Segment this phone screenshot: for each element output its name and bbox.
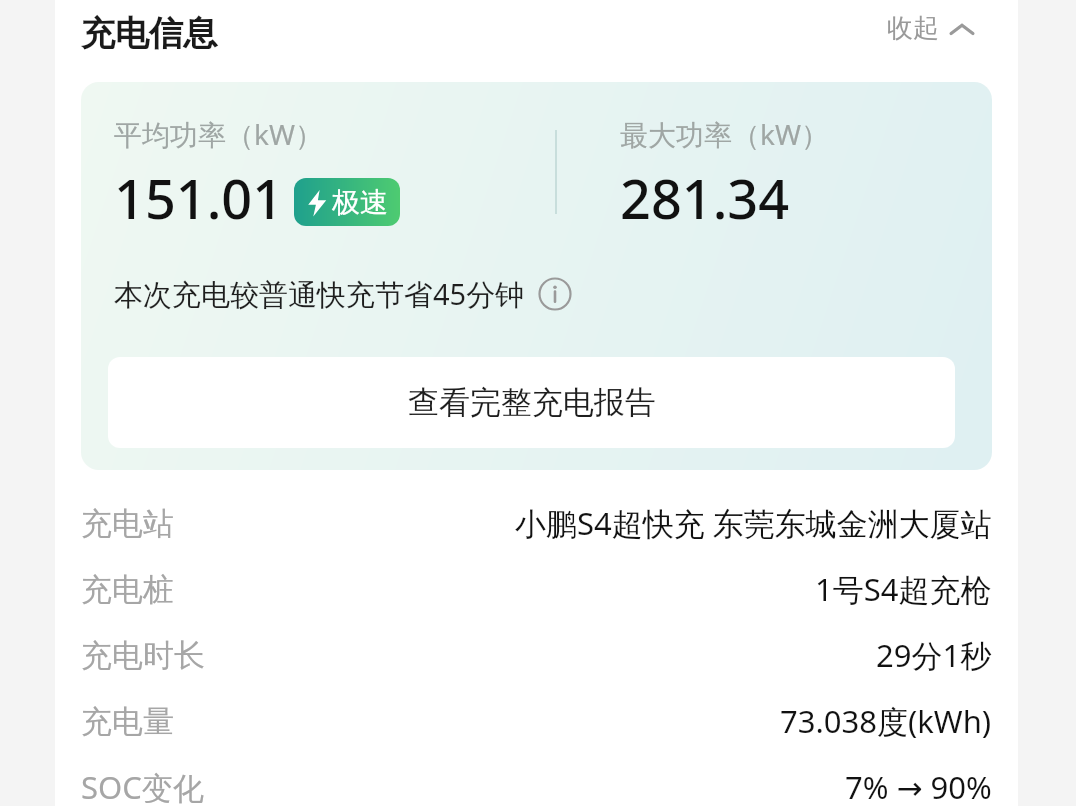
staticText: 充电量 bbox=[81, 702, 174, 741]
staticText: 1号S4超充枪 bbox=[815, 568, 992, 610]
button[interactable]: 充电桩 bbox=[81, 558, 992, 620]
button[interactable]: 收起 bbox=[883, 8, 979, 49]
button[interactable]: 充电时长 bbox=[81, 624, 992, 686]
staticText: 极速 bbox=[332, 185, 388, 220]
staticText: 查看完整充电报告 bbox=[408, 383, 656, 422]
button[interactable]: 充电量 bbox=[81, 690, 992, 752]
button[interactable]: 充电站 bbox=[81, 492, 992, 554]
staticText: 平均功率（kW） bbox=[114, 115, 323, 153]
button[interactable]: SOC变化 bbox=[81, 756, 992, 806]
staticText: 充电信息 bbox=[81, 12, 217, 55]
staticText: 7% → 90% bbox=[845, 766, 992, 806]
staticText: 小鹏S4超快充 东莞东城金洲大厦站 bbox=[515, 502, 992, 544]
staticText: 本次充电较普通快充节省45分钟 bbox=[114, 274, 525, 314]
button[interactable]: 说明 bbox=[537, 276, 573, 312]
staticText: 充电桩 bbox=[81, 570, 174, 609]
staticText: 281.34 bbox=[620, 161, 790, 235]
staticText: 73.038度(kWh) bbox=[780, 700, 992, 742]
staticText: 最大功率（kW） bbox=[620, 115, 829, 153]
staticText: 充电时长 bbox=[81, 636, 205, 675]
button[interactable]: 查看完整充电报告 bbox=[108, 357, 955, 448]
staticText: SOC变化 bbox=[81, 766, 204, 806]
staticText: 29分1秒 bbox=[876, 634, 992, 676]
staticText: 充电站 bbox=[81, 504, 174, 543]
staticText: 151.01 bbox=[114, 161, 284, 235]
staticText: 收起 bbox=[887, 12, 939, 45]
